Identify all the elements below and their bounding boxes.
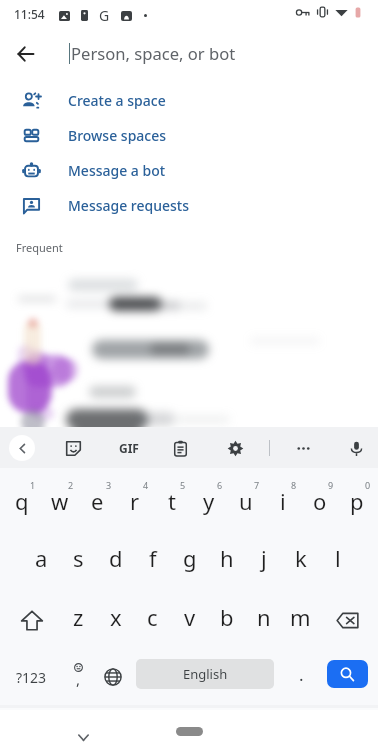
- staticText: 2: [68, 479, 74, 491]
- button[interactable]: Hide keyboard: [66, 720, 101, 755]
- staticText: 9: [328, 479, 334, 491]
- staticText: l: [335, 543, 341, 573]
- button[interactable]: s: [60, 532, 97, 590]
- button[interactable]: ?123: [6, 648, 56, 706]
- staticText: v: [184, 602, 196, 632]
- button[interactable]: GIF: [113, 435, 145, 461]
- button[interactable]: v: [171, 591, 208, 649]
- button[interactable]: Search: [327, 660, 368, 688]
- button[interactable]: Create a space: [0, 83, 378, 118]
- button[interactable]: Backspace: [319, 591, 375, 649]
- staticText: q: [15, 486, 29, 516]
- button[interactable]: 4: [116, 475, 153, 533]
- staticText: Message a bot: [68, 161, 166, 180]
- button[interactable]: 8: [264, 475, 301, 533]
- staticText: ?123: [16, 668, 47, 687]
- button[interactable]: d: [97, 532, 134, 590]
- staticText: G: [99, 6, 110, 25]
- staticText: d: [109, 543, 123, 573]
- staticText: j: [261, 543, 267, 573]
- staticText: 5: [180, 479, 186, 491]
- staticText: b: [220, 602, 234, 632]
- staticText: 11:54: [14, 6, 45, 22]
- button[interactable]: h: [208, 532, 245, 590]
- staticText: Person, space, or bot: [71, 42, 236, 65]
- button[interactable]: Keyboard tool: [60, 435, 86, 461]
- staticText: Browse spaces: [68, 126, 167, 145]
- staticText: 8: [291, 479, 297, 491]
- button[interactable]: j: [245, 532, 282, 590]
- button[interactable]: Change language: [95, 648, 131, 706]
- button[interactable]: Keyboard tool: [290, 435, 316, 461]
- staticText: 0: [365, 479, 371, 491]
- button[interactable]: Shift: [3, 591, 60, 649]
- button[interactable]: English: [136, 659, 274, 689]
- staticText: g: [183, 543, 197, 573]
- button[interactable]: Collapse toolbar: [9, 435, 35, 461]
- button[interactable]: Keyboard tool: [343, 435, 369, 461]
- staticText: h: [220, 543, 234, 573]
- staticText: e: [91, 486, 104, 516]
- staticText: y: [203, 486, 215, 516]
- button[interactable]: x: [97, 591, 134, 649]
- staticText: t: [168, 486, 176, 516]
- staticText: p: [350, 486, 364, 516]
- staticText: .: [299, 663, 304, 686]
- button[interactable]: Back: [4, 32, 48, 76]
- staticText: f: [149, 543, 157, 573]
- staticText: GIF: [119, 440, 139, 456]
- button[interactable]: Keyboard tool: [222, 435, 248, 461]
- staticText: n: [257, 602, 271, 632]
- button[interactable]: Browse spaces: [0, 118, 378, 153]
- button[interactable]: a: [23, 532, 60, 590]
- button[interactable]: Message a bot: [0, 153, 378, 188]
- staticText: w: [51, 486, 69, 516]
- staticText: u: [239, 486, 253, 516]
- button[interactable]: 2: [41, 475, 79, 533]
- button[interactable]: n: [245, 591, 282, 649]
- button[interactable]: .: [283, 648, 319, 706]
- staticText: 4: [143, 479, 149, 491]
- button[interactable]: Home: [176, 727, 203, 736]
- button[interactable]: 9: [301, 475, 338, 533]
- staticText: m: [290, 602, 311, 632]
- button[interactable]: m: [282, 591, 319, 649]
- staticText: a: [35, 543, 48, 573]
- button[interactable]: 1: [3, 475, 41, 533]
- button[interactable]: b: [208, 591, 245, 649]
- staticText: i: [280, 486, 286, 516]
- button[interactable]: 3: [79, 475, 116, 533]
- button[interactable]: 0: [338, 475, 375, 533]
- staticText: Message requests: [68, 196, 190, 215]
- button[interactable]: 6: [190, 475, 227, 533]
- button[interactable]: c: [134, 591, 171, 649]
- staticText: z: [73, 602, 84, 632]
- staticText: x: [110, 602, 122, 632]
- staticText: Create a space: [68, 91, 166, 110]
- button[interactable]: k: [282, 532, 319, 590]
- staticText: 7: [254, 479, 260, 491]
- staticText: English: [183, 665, 228, 683]
- staticText: s: [73, 543, 84, 573]
- button[interactable]: f: [134, 532, 171, 590]
- button[interactable]: Keyboard tool: [167, 435, 193, 461]
- button[interactable]: z: [60, 591, 97, 649]
- staticText: o: [313, 486, 327, 516]
- staticText: ,: [76, 669, 81, 689]
- button[interactable]: 5: [153, 475, 190, 533]
- staticText: Frequent: [16, 240, 63, 255]
- staticText: 3: [106, 479, 112, 491]
- staticText: 6: [217, 479, 223, 491]
- button[interactable]: Message requests: [0, 188, 378, 223]
- button[interactable]: g: [171, 532, 208, 590]
- staticText: 1: [30, 479, 36, 491]
- staticText: r: [130, 486, 140, 516]
- button[interactable]: 7: [227, 475, 264, 533]
- button[interactable]: Emoji: [58, 648, 98, 706]
- staticText: k: [295, 543, 307, 573]
- staticText: c: [147, 602, 158, 632]
- button[interactable]: l: [319, 532, 356, 590]
